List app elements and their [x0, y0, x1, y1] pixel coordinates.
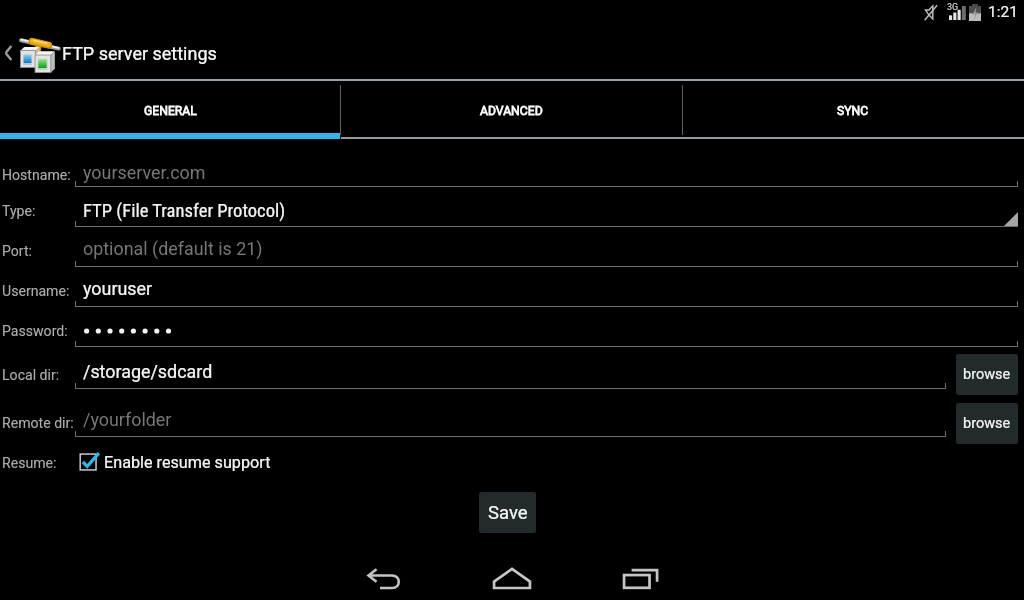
button[interactable]: Save — [479, 492, 536, 533]
button[interactable]: SYNC — [682, 81, 1024, 137]
button[interactable]: Enable resume support — [78, 448, 271, 476]
staticText: Remote dir: — [2, 415, 74, 432]
button[interactable]: Navigate up — [0, 27, 1024, 79]
staticText: Resume: — [2, 455, 57, 472]
staticText: yourserver.com — [83, 162, 206, 183]
button[interactable]: ADVANCED — [340, 81, 682, 137]
staticText: browse — [963, 366, 1011, 383]
staticText: Password: — [2, 323, 68, 340]
staticText: /storage/sdcard — [83, 361, 213, 382]
staticText: optional (default is 21) — [83, 238, 263, 259]
staticText: Hostname: — [2, 167, 71, 184]
button[interactable]: GENERAL — [0, 81, 340, 137]
button[interactable]: browse — [956, 354, 1018, 395]
staticText: 3G — [947, 2, 959, 13]
button[interactable]: Recent apps — [616, 554, 668, 600]
button[interactable]: Back — [361, 559, 411, 600]
staticText: Username: — [2, 283, 70, 300]
staticText: FTP (File Transfer Protocol) — [83, 200, 286, 222]
staticText: Enable resume support — [104, 453, 271, 472]
button[interactable]: Home — [486, 554, 538, 600]
staticText: Local dir: — [2, 367, 60, 384]
staticText: browse — [963, 415, 1011, 432]
staticText: Type: — [2, 203, 36, 220]
staticText: SYNC — [837, 104, 869, 118]
staticText: Port: — [2, 243, 32, 260]
staticText: /yourfolder — [83, 409, 172, 430]
staticText: GENERAL — [144, 104, 197, 118]
staticText: youruser — [83, 278, 153, 299]
button[interactable]: browse — [956, 403, 1018, 444]
staticText: 1:21 — [988, 3, 1018, 21]
other: Navigate up — [2, 42, 14, 64]
staticText: FTP server settings — [62, 43, 217, 64]
staticText: Save — [488, 502, 528, 524]
staticText: ADVANCED — [480, 104, 543, 118]
